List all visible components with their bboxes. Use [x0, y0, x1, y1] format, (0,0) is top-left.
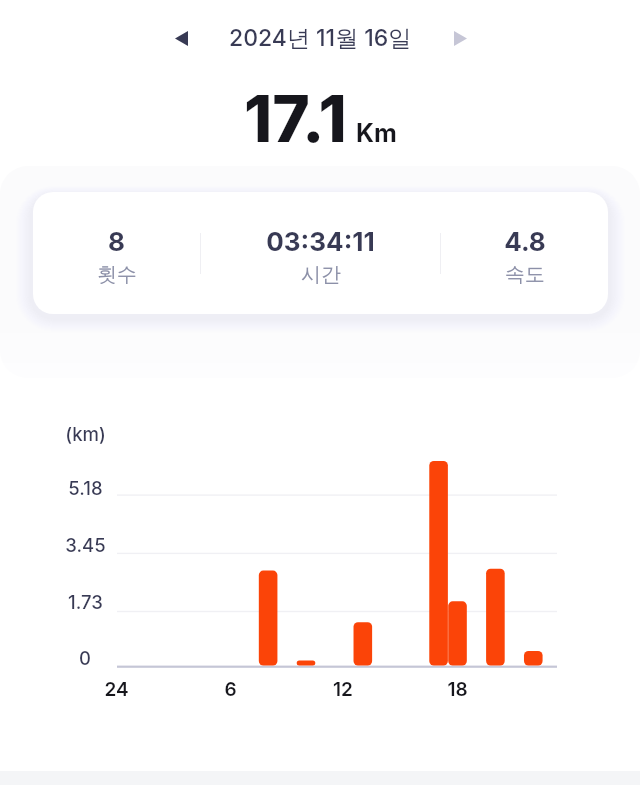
- staticText: 속도: [505, 262, 545, 287]
- staticText: 24: [104, 678, 129, 701]
- staticText: 18: [447, 678, 468, 701]
- button[interactable]: 8: [33, 192, 200, 314]
- staticText: 1.73: [68, 591, 103, 613]
- staticText: 6: [224, 678, 237, 701]
- staticText: 횟수: [97, 262, 137, 287]
- button[interactable]: 4.8: [441, 192, 608, 314]
- button[interactable]: 2024년 11월 16일: [0, 24, 640, 53]
- button[interactable]: 03:34:11: [201, 192, 440, 314]
- staticText: 2024년 11월 16일: [229, 24, 412, 53]
- staticText: 시간: [301, 262, 341, 287]
- staticText: 12: [333, 678, 353, 701]
- staticText: 5.18: [68, 477, 103, 499]
- staticText: 17.1: [244, 80, 347, 157]
- button[interactable]: Previous day: [163, 20, 199, 56]
- staticText: 4.8: [504, 226, 546, 257]
- staticText: Km: [356, 118, 397, 148]
- staticText: 3.45: [65, 534, 106, 556]
- staticText: 8: [108, 226, 125, 257]
- staticText: (km): [65, 423, 106, 445]
- staticText: 03:34:11: [266, 226, 375, 257]
- staticText: 0: [79, 647, 91, 669]
- button[interactable]: Next day: [442, 20, 478, 56]
